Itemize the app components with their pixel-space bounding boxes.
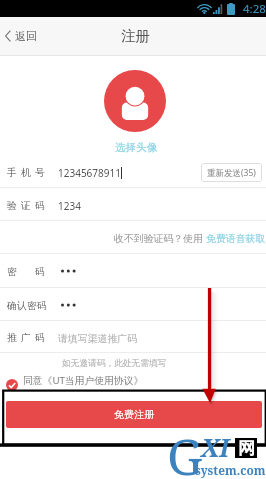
staticText: 1234 <box>58 199 81 213</box>
button[interactable]: 免费注册 <box>6 401 262 428</box>
staticText: 确 <box>7 300 17 312</box>
staticText: 证 <box>21 200 31 212</box>
button[interactable]: 选择头像 <box>115 141 158 154</box>
staticText: 同意《UT当用户使用协议》 <box>23 374 144 387</box>
staticText: 验 <box>7 200 17 212</box>
staticText: XI <box>201 430 230 464</box>
staticText: 号 <box>35 167 45 179</box>
button[interactable]: 重新发送(35) <box>201 163 262 182</box>
staticText: 认 <box>17 300 27 312</box>
button[interactable]: 选择头像 <box>104 70 166 132</box>
staticText: 注册 <box>121 27 150 45</box>
staticText: 码 <box>37 300 45 312</box>
staticText: 网 <box>238 438 255 458</box>
staticText: 码 <box>35 266 45 278</box>
staticText: 手 <box>7 167 17 179</box>
staticText: 广 <box>21 332 31 344</box>
staticText: 4:28 <box>243 1 266 17</box>
staticText: 机 <box>21 167 31 179</box>
staticText: 码 <box>35 200 45 212</box>
staticText: 如无邀请码，此处无需填写 <box>62 358 167 369</box>
staticText: G <box>167 422 203 479</box>
staticText: 密 <box>7 266 17 278</box>
staticText: 密 <box>27 300 37 312</box>
staticText: 重新发送(35) <box>207 167 256 179</box>
staticText: 收不到验证码？使用 <box>114 232 204 244</box>
button[interactable]: 返回 <box>5 29 37 43</box>
staticText: 码 <box>35 332 45 344</box>
button[interactable]: 同意《UT当用户使用协议》 <box>6 372 266 390</box>
staticText: 免费注册 <box>114 408 154 421</box>
staticText: 推 <box>7 332 17 344</box>
staticText: 请填写渠道推广码 <box>58 332 138 344</box>
staticText: system.com <box>195 462 266 478</box>
button[interactable]: 免费语音获取 <box>206 232 266 244</box>
staticText: 12345678911 <box>58 166 121 180</box>
staticText: 返回 <box>15 29 37 43</box>
